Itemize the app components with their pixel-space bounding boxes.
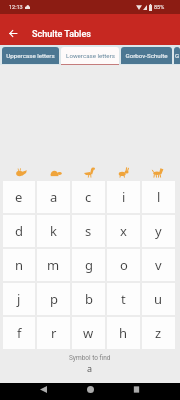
staticText: g — [85, 256, 93, 274]
staticText: x — [120, 222, 127, 240]
staticText: Symbol to find — [69, 354, 111, 362]
staticText: 12:13 — [9, 4, 23, 10]
button[interactable]: j — [3, 283, 35, 315]
button[interactable]: i — [107, 181, 140, 213]
button[interactable]: r — [37, 317, 70, 349]
staticText: a — [87, 362, 93, 374]
button[interactable]: h — [107, 317, 140, 349]
button[interactable]: m — [37, 249, 70, 281]
button[interactable]: o — [107, 249, 140, 281]
button[interactable]: e — [3, 181, 35, 213]
staticText: m — [47, 256, 60, 274]
staticText: y — [155, 222, 162, 240]
button[interactable]: Back — [4, 25, 21, 42]
button[interactable]: Gorbov — [174, 47, 180, 64]
staticText: Gorbov — [174, 52, 180, 59]
button[interactable]: Gorbov-Schulte — [121, 47, 172, 64]
staticText: f — [17, 324, 22, 342]
button[interactable]: w — [72, 317, 105, 349]
button[interactable]: Lowercase letters — [61, 47, 119, 64]
staticText: u — [154, 290, 163, 308]
button[interactable]: n — [3, 249, 35, 281]
staticText: c — [85, 188, 92, 206]
staticText: k — [50, 222, 57, 240]
button[interactable]: z — [142, 317, 175, 349]
staticText: d — [15, 222, 23, 240]
staticText: o — [120, 256, 128, 274]
button[interactable]: y — [142, 215, 175, 247]
staticText: w — [83, 324, 94, 342]
button[interactable]: s — [72, 215, 105, 247]
button[interactable]: x — [107, 215, 140, 247]
staticText: p — [50, 290, 58, 308]
staticText: Schulte Tables — [32, 29, 91, 40]
button[interactable]: a — [37, 181, 70, 213]
button[interactable]: k — [37, 215, 70, 247]
button[interactable]: Home — [79, 383, 101, 396]
staticText: j — [17, 290, 21, 308]
staticText: i — [122, 188, 126, 206]
button[interactable]: l — [142, 181, 175, 213]
staticText: t — [121, 290, 126, 308]
staticText: r — [51, 324, 57, 342]
button[interactable]: g — [72, 249, 105, 281]
staticText: b — [85, 290, 93, 308]
staticText: e — [15, 188, 23, 206]
button[interactable]: c — [72, 181, 105, 213]
staticText: h — [119, 324, 128, 342]
button[interactable]: Back — [32, 383, 54, 396]
staticText: n — [15, 256, 24, 274]
staticText: Gorbov-Schulte — [125, 52, 168, 59]
staticText: s — [85, 222, 92, 240]
staticText: l — [157, 188, 161, 206]
button[interactable]: Recents — [125, 383, 147, 396]
staticText: z — [155, 324, 162, 342]
button[interactable]: f — [3, 317, 35, 349]
staticText: Lowercase letters — [66, 52, 115, 59]
staticText: Uppercase letters — [6, 52, 55, 59]
button[interactable]: p — [37, 283, 70, 315]
staticText: v — [155, 256, 162, 274]
staticText: a — [50, 188, 58, 206]
button[interactable]: u — [142, 283, 175, 315]
button[interactable]: b — [72, 283, 105, 315]
button[interactable]: Uppercase letters — [2, 47, 59, 64]
button[interactable]: v — [142, 249, 175, 281]
button[interactable]: d — [3, 215, 35, 247]
button[interactable]: t — [107, 283, 140, 315]
staticText: 85% — [154, 4, 165, 10]
